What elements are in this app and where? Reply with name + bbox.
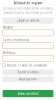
staticText: Correo electrónico	[3, 38, 30, 42]
staticText: Solicitud de registro	[13, 1, 42, 5]
staticText: Enviar solicitud	[17, 92, 38, 95]
staticText: Agregar otro	[19, 78, 37, 81]
button[interactable]: Cargar un archivo	[3, 17, 53, 24]
button[interactable]: Agregar otro	[3, 77, 53, 82]
staticText: Cargar un archivo	[16, 19, 39, 22]
staticText: Los siguientes datos serán utilizados	[3, 7, 53, 10]
button[interactable]: Enviar solicitud	[3, 90, 53, 97]
staticText: Teléfono	[3, 51, 16, 55]
staticText: para verificar su identidad personal	[4, 11, 52, 15]
staticText: Borrar los datos	[17, 70, 38, 74]
staticText: Nombre	[3, 26, 14, 29]
button[interactable]: Acepto el aviso de privacidad	[0, 64, 56, 67]
button[interactable]: Borrar los datos	[3, 69, 53, 75]
staticText: Acepto el aviso de privacidad	[7, 64, 47, 67]
